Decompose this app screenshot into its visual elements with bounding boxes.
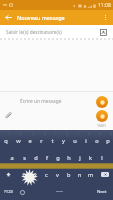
button[interactable]: l: [96, 149, 107, 166]
button[interactable]: 4: [36, 132, 47, 149]
staticText: 3: [32, 132, 34, 136]
button[interactable]: Next: [91, 183, 113, 200]
button[interactable]: Shift: [0, 166, 17, 183]
staticText: n: [78, 171, 82, 179]
button[interactable]: k: [85, 149, 96, 166]
button[interactable]: 2: [12, 132, 24, 149]
button[interactable]: 0: [102, 132, 113, 149]
staticText: a: [10, 154, 14, 162]
button[interactable]: b: [63, 166, 74, 183]
staticText: ?123: [4, 189, 14, 195]
staticText: w: [16, 137, 21, 145]
staticText: c: [45, 171, 48, 179]
button[interactable]: Attach file: [2, 109, 14, 121]
button[interactable]: d: [30, 149, 41, 166]
staticText: l: [101, 154, 103, 162]
staticText: t: [51, 137, 54, 145]
button[interactable]: 6: [58, 132, 69, 149]
staticText: m: [88, 171, 94, 179]
button[interactable]: 3: [24, 132, 36, 149]
button[interactable]: h: [63, 149, 74, 166]
staticText: y: [62, 137, 65, 145]
button[interactable]: s: [18, 149, 30, 166]
staticText: d: [34, 154, 38, 162]
button[interactable]: 1: [0, 132, 12, 149]
button[interactable]: f: [41, 149, 52, 166]
button[interactable]: g: [52, 149, 63, 166]
staticText: j: [79, 154, 81, 162]
staticText: b: [67, 171, 71, 179]
staticText: k: [89, 154, 92, 162]
staticText: o: [95, 137, 99, 145]
button[interactable]: 7: [69, 132, 80, 149]
staticText: 2: [20, 132, 22, 136]
staticText: g: [56, 154, 60, 162]
staticText: 8: [88, 132, 90, 136]
staticText: 4: [44, 132, 46, 136]
staticText: 6: [66, 132, 68, 136]
staticText: e: [28, 137, 32, 145]
staticText: Saisir le(s) destinataire(s): [6, 29, 62, 36]
staticText: u: [73, 137, 77, 145]
button[interactable]: 9: [91, 132, 102, 149]
button[interactable]: More options: [99, 11, 112, 24]
button[interactable]: Space: [27, 183, 91, 200]
button[interactable]: a: [6, 149, 18, 166]
staticText: 5: [55, 132, 57, 136]
staticText: 9: [99, 132, 101, 136]
staticText: Écrire un message: [20, 98, 62, 105]
staticText: Next: [97, 189, 107, 195]
button[interactable]: Back: [2, 11, 15, 24]
button[interactable]: c: [41, 166, 52, 183]
button[interactable]: ?123: [0, 183, 17, 200]
staticText: 160/1: [97, 123, 107, 128]
staticText: p: [106, 137, 110, 145]
staticText: h: [67, 154, 71, 162]
button[interactable]: x: [29, 166, 41, 183]
button[interactable]: v: [52, 166, 63, 183]
button[interactable]: Backspace: [96, 166, 113, 183]
button[interactable]: m: [85, 166, 96, 183]
staticText: 11:08: [98, 2, 111, 9]
button[interactable]: Emoji: [96, 96, 108, 108]
staticText: i: [85, 137, 87, 145]
staticText: 7: [77, 132, 79, 136]
button[interactable]: Emoji keyboard: [17, 187, 27, 197]
staticText: q: [4, 137, 8, 145]
staticText: v: [56, 171, 59, 179]
staticText: 1: [8, 132, 10, 136]
button[interactable]: z: [17, 166, 29, 183]
staticText: Nouveau message: [17, 14, 65, 21]
staticText: z: [22, 171, 25, 179]
staticText: r: [40, 137, 43, 145]
button[interactable]: j: [74, 149, 85, 166]
button[interactable]: Add contact: [98, 27, 109, 38]
button[interactable]: n: [74, 166, 85, 183]
staticText: 0: [110, 132, 112, 136]
button[interactable]: 8: [80, 132, 91, 149]
staticText: x: [34, 171, 37, 179]
button[interactable]: Send message: [96, 110, 108, 122]
button[interactable]: 5: [47, 132, 58, 149]
staticText: s: [23, 154, 26, 162]
staticText: f: [46, 154, 48, 162]
